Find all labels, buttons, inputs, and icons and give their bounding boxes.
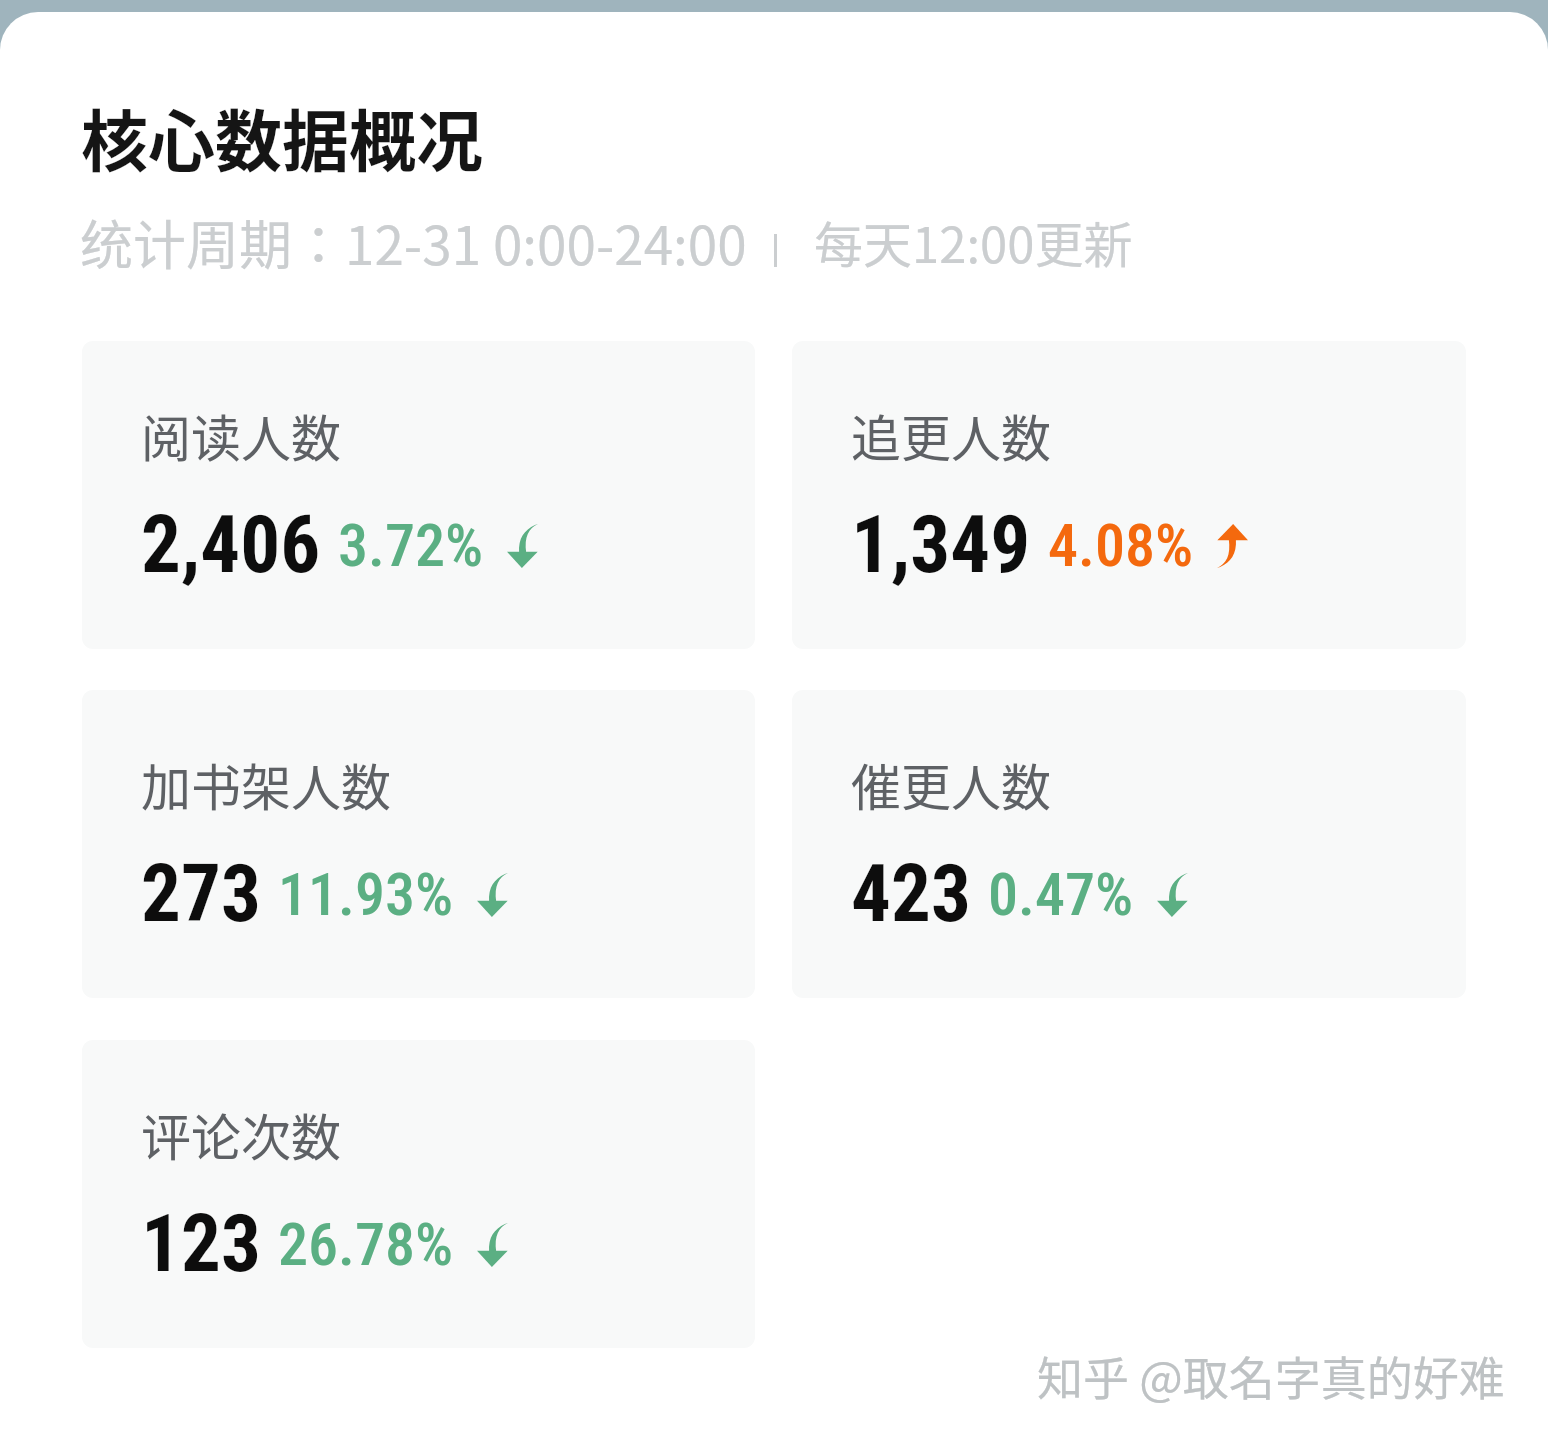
staticText: 评论次数 <box>141 1098 341 1170</box>
other: Trending up <box>1217 524 1248 568</box>
staticText: 273 <box>141 848 261 941</box>
staticText: 3.72% <box>338 510 484 580</box>
staticText: 统计周期：12-31 0:00-24:00 <box>80 204 747 281</box>
staticText: 123 <box>141 1198 261 1291</box>
staticText: 阅读人数 <box>141 399 341 471</box>
staticText: 每天12:00更新 <box>814 206 1133 277</box>
staticText: 1,349 <box>851 499 1031 592</box>
staticText: 11.93% <box>278 859 454 929</box>
staticText: 423 <box>851 848 971 941</box>
staticText: 2,406 <box>141 499 321 592</box>
staticText: 加书架人数 <box>141 748 391 820</box>
other: Trending down <box>477 873 508 917</box>
staticText: 4.08% <box>1048 510 1194 580</box>
other: Trending down <box>507 524 538 568</box>
other: Trending down <box>477 1223 508 1267</box>
staticText: 追更人数 <box>851 399 1051 471</box>
staticText: 知乎 @取名字真的好难 <box>1037 1342 1505 1409</box>
staticText: 核心数据概况 <box>81 88 483 185</box>
button[interactable]: 评论次数 <box>82 1040 755 1348</box>
staticText: 0.47% <box>988 859 1134 929</box>
button[interactable]: 催更人数 <box>792 690 1466 998</box>
other: Trending down <box>1157 873 1188 917</box>
staticText: 催更人数 <box>851 748 1051 820</box>
button[interactable]: 加书架人数 <box>82 690 755 998</box>
staticText: 26.78% <box>278 1209 454 1279</box>
button[interactable]: 追更人数 <box>792 341 1466 649</box>
button[interactable]: 阅读人数 <box>82 341 755 649</box>
